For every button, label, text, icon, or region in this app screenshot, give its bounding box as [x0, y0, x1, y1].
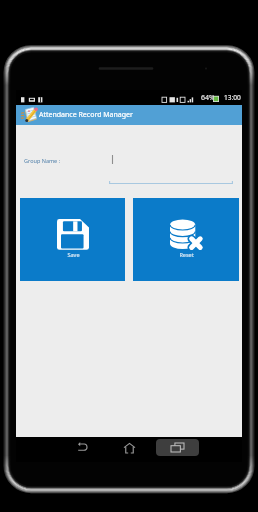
staticText: Save	[67, 251, 80, 258]
staticText: Reset	[179, 251, 194, 258]
button[interactable]: Home	[118, 437, 140, 459]
button[interactable]: Reset	[133, 198, 239, 281]
staticText: Group Name :	[24, 157, 61, 164]
staticText: 64%	[201, 93, 215, 103]
button[interactable]: Save	[20, 198, 125, 281]
staticText: Attendance Record Manager	[39, 110, 133, 120]
button[interactable]: Back	[71, 435, 95, 457]
staticText: 13:00	[224, 93, 241, 102]
button[interactable]: Recent apps	[156, 439, 199, 456]
